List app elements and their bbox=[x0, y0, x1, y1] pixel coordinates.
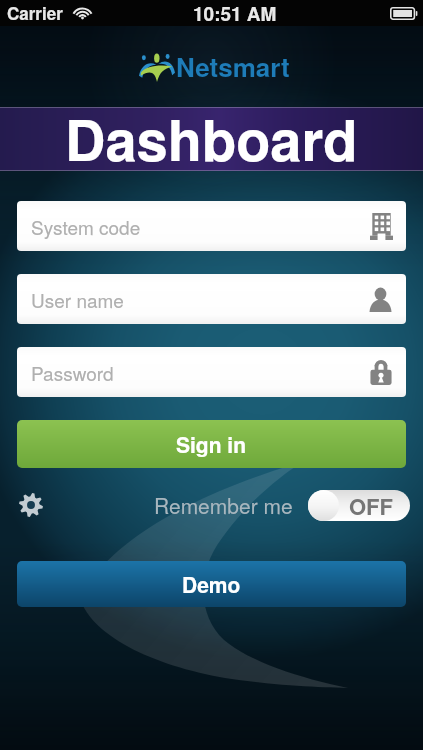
other: User name bbox=[368, 287, 393, 312]
button[interactable]: Settings bbox=[17, 491, 45, 519]
staticText: Demo bbox=[182, 569, 241, 599]
staticText: Carrier bbox=[7, 1, 63, 25]
button[interactable]: Sign in bbox=[17, 420, 406, 468]
staticText: OFF bbox=[349, 490, 394, 521]
staticText: Password bbox=[31, 359, 114, 386]
staticText: Remember me bbox=[154, 490, 293, 520]
button[interactable]: Password bbox=[17, 347, 406, 397]
staticText: User name bbox=[31, 286, 124, 313]
staticText: Dashboard bbox=[65, 98, 358, 162]
button[interactable]: User name bbox=[17, 274, 406, 324]
button[interactable]: Remember me toggle bbox=[308, 490, 410, 521]
button[interactable]: System code bbox=[17, 201, 406, 251]
staticText: 10:51 AM bbox=[193, 0, 277, 26]
other: Password bbox=[369, 359, 393, 386]
staticText: Netsmart bbox=[176, 48, 290, 85]
other: System code bbox=[370, 213, 393, 240]
staticText: System code bbox=[31, 213, 141, 240]
button[interactable]: Demo bbox=[17, 561, 406, 607]
staticText: Sign in bbox=[176, 429, 247, 459]
